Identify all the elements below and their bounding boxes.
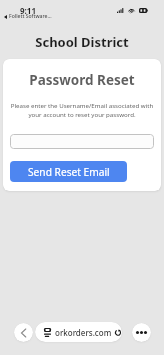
staticText: Send Reset Email bbox=[28, 165, 110, 179]
button[interactable]: orkorders.com bbox=[35, 322, 122, 342]
button[interactable]: Send Reset Email bbox=[10, 161, 127, 182]
staticText: Follett Software... bbox=[9, 13, 52, 20]
button[interactable]: More options bbox=[132, 323, 151, 342]
staticText: 9:11 bbox=[20, 5, 36, 16]
button[interactable]: Username or Email bbox=[10, 134, 154, 149]
staticText: School District bbox=[0, 33, 164, 51]
staticText: orkorders.com bbox=[55, 327, 112, 338]
staticText: Password Reset bbox=[3, 71, 161, 89]
staticText: Please enter the Username/Email associat… bbox=[7, 101, 157, 119]
button[interactable]: Back bbox=[14, 323, 33, 342]
